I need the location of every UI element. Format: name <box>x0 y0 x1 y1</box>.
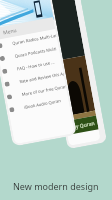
staticText: Rate and Review this App! <box>19 71 64 85</box>
staticText: Quran Radios Multi-Language <box>12 33 57 47</box>
button[interactable]: iBook Audio Quran <box>7 93 70 117</box>
button[interactable]: Quran Radios Multi-Language <box>0 29 58 53</box>
button[interactable]: Quran Podcasts Multi <box>0 42 60 66</box>
staticText: FAQ - How to use ... <box>17 60 55 72</box>
button[interactable]: Play Quran <box>65 115 99 135</box>
staticText: iBook Audio Quran <box>24 98 62 111</box>
staticText: More of our free Quran Apps <box>21 84 67 98</box>
staticText: Quran Podcasts Multi <box>14 46 58 60</box>
staticText: Menu <box>3 27 18 36</box>
button[interactable]: FAQ - How to use ... <box>0 54 62 78</box>
staticText: Play Quran <box>68 120 95 132</box>
button[interactable]: More of our free Quran Apps <box>5 80 67 104</box>
button[interactable]: Rate and Review this App! <box>2 67 65 91</box>
staticText: New modern design <box>13 180 99 192</box>
